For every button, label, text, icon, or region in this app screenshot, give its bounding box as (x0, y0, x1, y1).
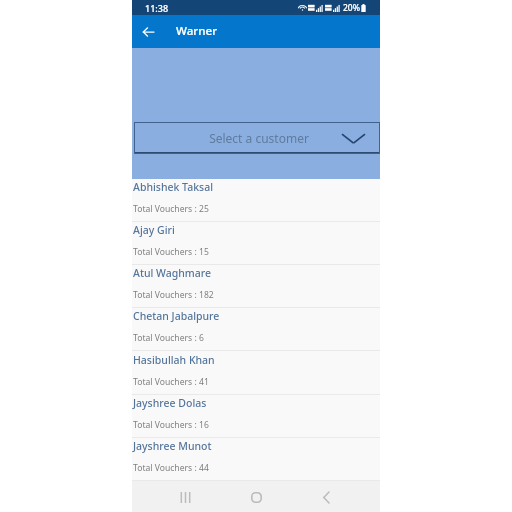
button[interactable]: Jayshree Dolas (132, 395, 380, 438)
button[interactable]: Back (314, 485, 338, 509)
staticText: Hasibullah Khan (133, 353, 215, 367)
staticText: Total Vouchers : 15 (133, 246, 209, 258)
button[interactable]: Recents (173, 485, 197, 509)
staticText: 11:38 (145, 2, 169, 14)
staticText: Warner (176, 23, 218, 39)
button[interactable]: Ajay Giri (132, 222, 380, 265)
button[interactable]: Jayshree Munot (132, 438, 380, 481)
staticText: 20% (343, 2, 360, 14)
button[interactable]: Home (244, 485, 268, 509)
staticText: Chetan Jabalpure (133, 309, 220, 323)
staticText: Jayshree Munot (133, 439, 212, 453)
staticText: Total Vouchers : 6 (133, 332, 204, 344)
staticText: Atul Waghmare (133, 266, 212, 280)
staticText: Total Vouchers : 44 (133, 462, 209, 474)
staticText: Total Vouchers : 25 (133, 203, 209, 215)
staticText: Ajay Giri (133, 223, 175, 237)
button[interactable]: Hasibullah Khan (132, 352, 380, 395)
staticText: Jayshree Dolas (133, 396, 207, 410)
button[interactable]: Atul Waghmare (132, 265, 380, 308)
button[interactable]: Chetan Jabalpure (132, 308, 380, 351)
staticText: Total Vouchers : 182 (133, 289, 214, 301)
button[interactable]: Abhishek Taksal (132, 179, 380, 222)
staticText: Abhishek Taksal (133, 180, 213, 194)
staticText: Select a customer (209, 130, 309, 146)
button[interactable]: Back (137, 20, 160, 43)
staticText: Total Vouchers : 16 (133, 419, 209, 431)
staticText: Total Vouchers : 41 (133, 376, 209, 388)
button[interactable]: Select a customer (134, 122, 380, 154)
